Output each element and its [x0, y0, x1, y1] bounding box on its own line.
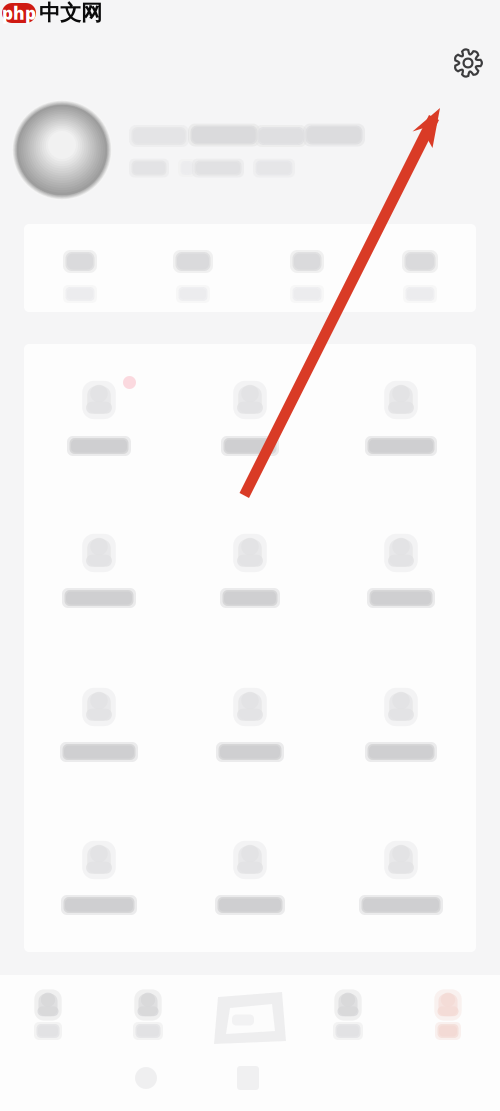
- button[interactable]: 我的: [400, 990, 496, 1062]
- button[interactable]: 获赞: [365, 224, 475, 312]
- button[interactable]: 地址管理: [24, 691, 174, 813]
- button[interactable]: 联系客服: [326, 844, 476, 966]
- button[interactable]: 我的足迹: [326, 537, 476, 659]
- button[interactable]: 帮助中心: [24, 844, 174, 966]
- button[interactable]: 粉丝: [252, 224, 362, 312]
- button[interactable]: 账号设置: [175, 691, 325, 813]
- button[interactable]: 优惠券: [326, 385, 476, 507]
- button[interactable]: Settings: [441, 36, 495, 90]
- button[interactable]: 首页: [0, 990, 96, 1062]
- button[interactable]: 消息: [300, 990, 396, 1062]
- button[interactable]: 分类: [100, 990, 196, 1062]
- button[interactable]: 发布: [200, 981, 300, 1055]
- button[interactable]: 动态: [25, 224, 135, 312]
- button[interactable]: 意见反馈: [326, 691, 476, 813]
- button[interactable]: 我的收藏: [24, 537, 174, 659]
- staticText: 中文网: [39, 0, 102, 26]
- button[interactable]: 关注: [138, 224, 248, 312]
- button[interactable]: 关于我们: [175, 844, 325, 966]
- staticText: php: [2, 1, 36, 24]
- button[interactable]: 我的钱包: [175, 385, 325, 507]
- button[interactable]: 浏览记录: [175, 537, 325, 659]
- button[interactable]: 我的订单: [24, 385, 174, 507]
